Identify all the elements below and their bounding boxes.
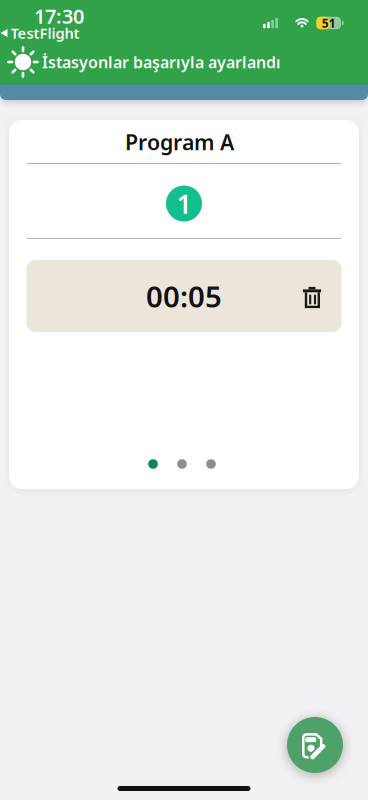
button[interactable]: İstasyonlar başarıyla ayarlandı xyxy=(0,41,368,83)
button[interactable]: Delete xyxy=(292,277,332,317)
button[interactable]: Edit program xyxy=(287,717,343,773)
staticText: 1 xyxy=(176,186,191,221)
staticText: 00:05 xyxy=(146,276,222,315)
staticText: İstasyonlar başarıyla ayarlandı xyxy=(42,51,281,73)
staticText: Program A xyxy=(125,128,234,156)
staticText: TestFlight xyxy=(10,23,79,43)
staticText: 17:30 xyxy=(34,3,84,29)
button[interactable]: 00:05 xyxy=(26,260,341,332)
staticText: 51 xyxy=(322,15,336,31)
button[interactable]: Page 1 of 3 xyxy=(148,459,216,469)
